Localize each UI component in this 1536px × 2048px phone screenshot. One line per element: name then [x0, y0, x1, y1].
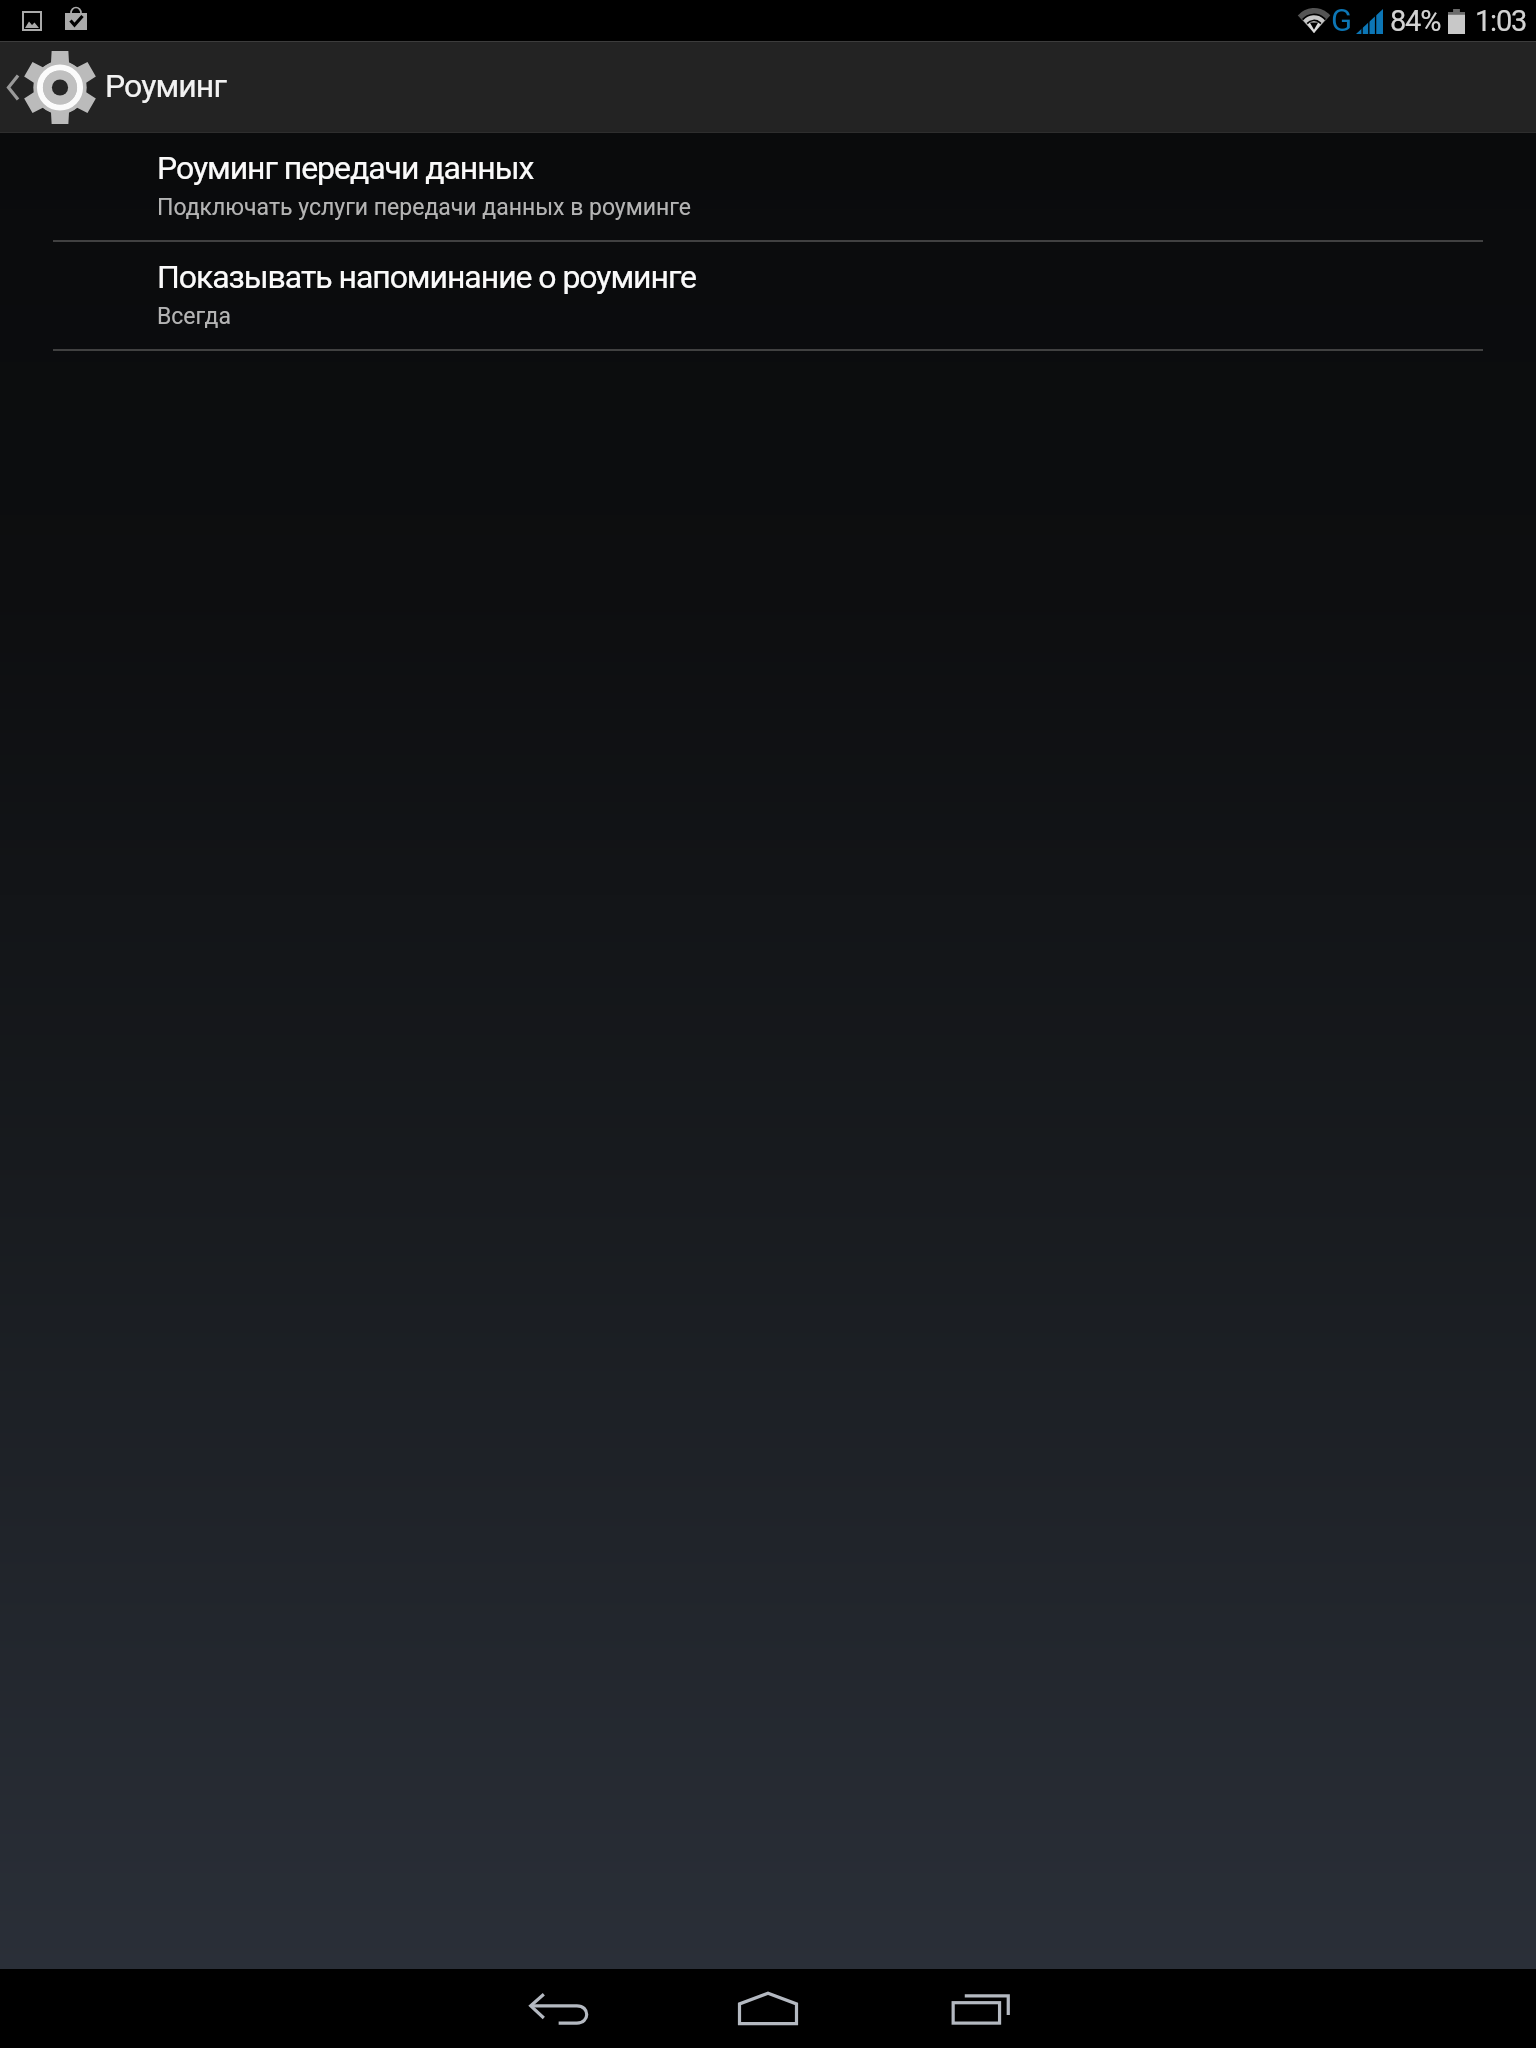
staticText: Всегда: [157, 303, 231, 330]
button[interactable]: Показывать напоминание о роуминге: [0, 242, 1536, 351]
staticText: 84%: [1390, 4, 1441, 38]
button[interactable]: Назад: [507, 1969, 607, 2048]
button[interactable]: Недавние приложения: [931, 1969, 1031, 2048]
button[interactable]: Назад: [0, 41, 1536, 133]
staticText: Роуминг передачи данных: [157, 149, 534, 187]
staticText: Подключать услуги передачи данных в роум…: [157, 194, 691, 221]
staticText: Показывать напоминание о роуминге: [157, 258, 696, 296]
staticText: G: [1331, 2, 1353, 38]
button[interactable]: Роуминг передачи данных: [0, 133, 1536, 242]
staticText: Роуминг: [105, 67, 226, 105]
button[interactable]: Главный экран: [718, 1969, 818, 2048]
staticText: 1:03: [1475, 4, 1527, 38]
